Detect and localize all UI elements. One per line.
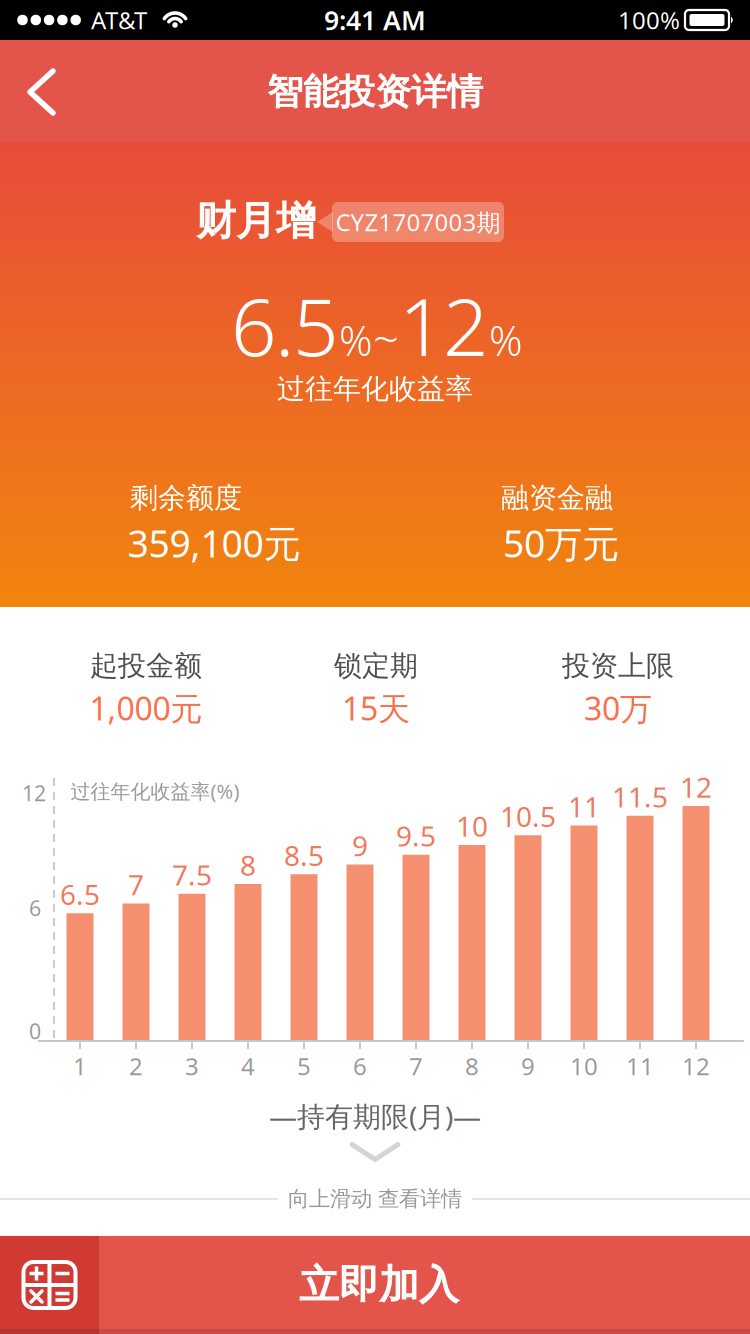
staticText: 5: [297, 1050, 311, 1082]
button[interactable]: [0, 1236, 99, 1334]
staticText: 0: [29, 1017, 41, 1045]
staticText: 12: [682, 1050, 710, 1082]
staticText: %: [339, 313, 373, 367]
staticText: 智能投资详情: [267, 70, 483, 114]
staticText: 7: [409, 1050, 423, 1082]
staticText: 6: [353, 1050, 367, 1082]
staticText: 8: [465, 1050, 479, 1082]
staticText: 投资上限: [562, 649, 674, 683]
staticText: 4: [241, 1050, 255, 1082]
staticText: 12: [680, 768, 712, 806]
staticText: 6.5: [60, 876, 100, 913]
staticText: 1,000元: [89, 687, 202, 729]
staticText: 向上滑动 查看详情: [288, 1186, 462, 1212]
staticText: 11: [626, 1050, 654, 1082]
staticText: 12: [22, 779, 46, 807]
staticText: 过往年化收益率(%): [70, 778, 239, 804]
staticText: 9: [521, 1050, 535, 1082]
button[interactable]: 立即加入: [99, 1236, 750, 1334]
staticText: 11: [568, 788, 600, 825]
staticText: 100%: [618, 4, 680, 36]
staticText: 11.5: [612, 778, 668, 815]
staticText: —持有期限(月)—: [269, 1097, 481, 1135]
staticText: %: [489, 313, 523, 367]
staticText: 8.5: [284, 837, 324, 874]
staticText: 锁定期: [334, 649, 418, 683]
staticText: 7: [128, 866, 144, 903]
staticText: 8: [240, 846, 256, 884]
staticText: 15天: [342, 687, 410, 729]
staticText: 50万元: [503, 518, 619, 568]
staticText: 6: [29, 894, 41, 922]
staticText: 过往年化收益率: [277, 372, 473, 406]
staticText: 融资金融: [501, 481, 613, 515]
staticText: 1: [73, 1050, 87, 1082]
staticText: 9: [352, 827, 368, 864]
staticText: 9.5: [396, 817, 436, 854]
staticText: 359,100元: [127, 518, 300, 568]
staticText: 剩余额度: [130, 481, 242, 515]
staticText: 9:41 AM: [324, 2, 426, 38]
staticText: 2: [129, 1050, 143, 1082]
staticText: 30万: [584, 687, 652, 729]
staticText: CYZ1707003期: [335, 206, 500, 238]
staticText: 10: [570, 1050, 598, 1082]
staticText: AT&T: [91, 4, 147, 36]
staticText: 起投金额: [90, 649, 202, 683]
staticText: ~: [373, 308, 399, 369]
staticText: 立即加入: [299, 1260, 459, 1309]
staticText: 财月增: [196, 196, 316, 245]
staticText: 10.5: [500, 798, 556, 835]
staticText: 10: [456, 807, 488, 845]
staticText: 6.5: [231, 272, 339, 378]
staticText: 12: [399, 272, 489, 378]
staticText: 7.5: [172, 856, 212, 893]
staticText: 3: [185, 1050, 199, 1082]
button[interactable]: [6, 58, 74, 126]
